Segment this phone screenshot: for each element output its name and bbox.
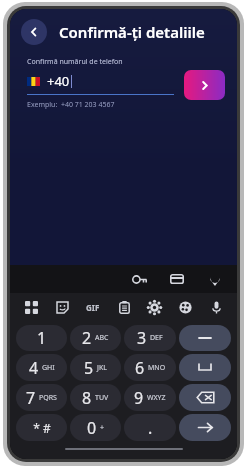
staticText: 7 xyxy=(26,387,36,409)
button[interactable]: Themes xyxy=(174,296,196,318)
button[interactable]: 0 xyxy=(70,414,121,441)
staticText: 1 xyxy=(37,327,47,349)
staticText: * # xyxy=(33,420,51,436)
staticText: WXYZ xyxy=(147,393,166,403)
button[interactable]: Stickers xyxy=(51,296,73,318)
button[interactable]: Voice input xyxy=(205,296,227,318)
button[interactable]: Clipboard xyxy=(113,296,135,318)
staticText: 0 xyxy=(87,417,97,439)
staticText: 6 xyxy=(135,357,145,379)
staticText: + xyxy=(100,423,105,433)
button[interactable]: . xyxy=(124,414,176,441)
button[interactable]: 9 xyxy=(124,384,176,411)
staticText: 2 xyxy=(82,327,92,349)
button[interactable]: 6 xyxy=(124,354,176,381)
button[interactable]: 3 xyxy=(124,325,176,351)
staticText: PQRS xyxy=(39,393,57,403)
button[interactable]: 4 xyxy=(16,354,67,381)
button[interactable]: Backspace xyxy=(179,384,231,411)
button[interactable]: Apps xyxy=(20,296,42,318)
staticText: GIF xyxy=(86,302,100,313)
staticText: 4 xyxy=(29,357,39,379)
button[interactable]: Enter xyxy=(179,414,231,441)
button[interactable]: GIF xyxy=(82,296,104,318)
button[interactable]: 1 xyxy=(16,325,67,351)
button[interactable]: Back xyxy=(21,19,47,45)
button[interactable]: Dash xyxy=(179,325,231,351)
staticText: 8 xyxy=(82,387,92,409)
staticText: +40 xyxy=(47,72,70,90)
staticText: 9 xyxy=(134,387,144,409)
staticText: Confirmă numărul de telefon xyxy=(27,57,123,67)
button[interactable]: 7 xyxy=(16,384,67,411)
button[interactable]: Continue xyxy=(184,70,225,100)
staticText: GHI xyxy=(42,363,55,373)
staticText: Confirmă-ți detaliile xyxy=(59,22,205,42)
staticText: DEF xyxy=(150,333,163,343)
button[interactable]: Passwords xyxy=(128,268,150,290)
staticText: MNO xyxy=(148,363,166,373)
button[interactable]: Space xyxy=(179,354,231,381)
button[interactable]: 8 xyxy=(70,384,121,411)
button[interactable]: Settings xyxy=(143,296,165,318)
staticText: Exemplu: +40 71 203 4567 xyxy=(27,100,115,110)
staticText: 3 xyxy=(137,327,147,349)
staticText: 5 xyxy=(84,357,94,379)
button[interactable]: 5 xyxy=(70,354,121,381)
staticText: . xyxy=(148,417,153,439)
button[interactable]: * # xyxy=(16,414,67,441)
button[interactable]: 2 xyxy=(70,325,121,351)
staticText: JKL xyxy=(97,363,107,373)
button[interactable]: Addresses xyxy=(204,268,226,290)
staticText: ABC xyxy=(95,333,109,343)
staticText: TUV xyxy=(95,393,109,403)
button[interactable]: Payment cards xyxy=(166,268,188,290)
